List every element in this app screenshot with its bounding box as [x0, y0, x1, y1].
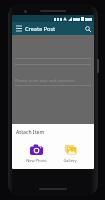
button[interactable]: New Photo: [21, 142, 51, 164]
button[interactable]: Search: [82, 23, 93, 34]
button[interactable]: Open navigation menu: [13, 23, 24, 34]
staticText: New Photo: [26, 158, 47, 163]
button[interactable]: Gallery: [55, 142, 85, 164]
staticText: Title is required: [15, 39, 45, 44]
staticText: Create Post: [25, 25, 56, 32]
staticText: Attach Item: [16, 129, 45, 136]
staticText: Gallery: [63, 158, 77, 163]
staticText: Please share tags and comment: [15, 78, 75, 83]
